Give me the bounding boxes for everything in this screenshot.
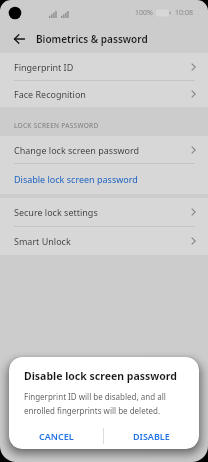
staticText: Change lock screen password bbox=[14, 144, 140, 156]
staticText: Disable lock screen password bbox=[24, 369, 177, 383]
staticText: Smart Unlock bbox=[14, 235, 71, 247]
staticText: Disable lock screen password bbox=[14, 173, 138, 185]
staticText: Face Recognition bbox=[14, 88, 86, 100]
staticText: Secure lock settings bbox=[14, 206, 98, 218]
staticText: Biometrics & password bbox=[36, 32, 148, 46]
button[interactable]: Smart Unlock bbox=[0, 227, 208, 255]
staticText: LOCK SCREEN PASSWORD bbox=[14, 121, 99, 130]
button[interactable]: Secure lock settings bbox=[0, 198, 208, 226]
staticText: Fingerprint ID will be disabled, and all bbox=[24, 391, 166, 402]
button[interactable]: DISABLE bbox=[104, 423, 199, 449]
button[interactable] bbox=[8, 28, 30, 50]
staticText: 100% bbox=[135, 8, 153, 18]
staticText: Fingerprint ID bbox=[14, 61, 74, 73]
button[interactable]: Disable lock screen password bbox=[0, 164, 208, 194]
button[interactable]: Change lock screen password bbox=[0, 136, 208, 163]
staticText: 10:08 bbox=[175, 8, 193, 18]
button[interactable]: Fingerprint ID bbox=[0, 53, 208, 80]
staticText: DISABLE bbox=[133, 430, 170, 442]
button[interactable]: Face Recognition bbox=[0, 81, 208, 107]
button[interactable]: CANCEL bbox=[9, 423, 103, 449]
staticText: enrolled fingerprints will be deleted. bbox=[24, 405, 161, 416]
staticText: CANCEL bbox=[39, 430, 74, 442]
